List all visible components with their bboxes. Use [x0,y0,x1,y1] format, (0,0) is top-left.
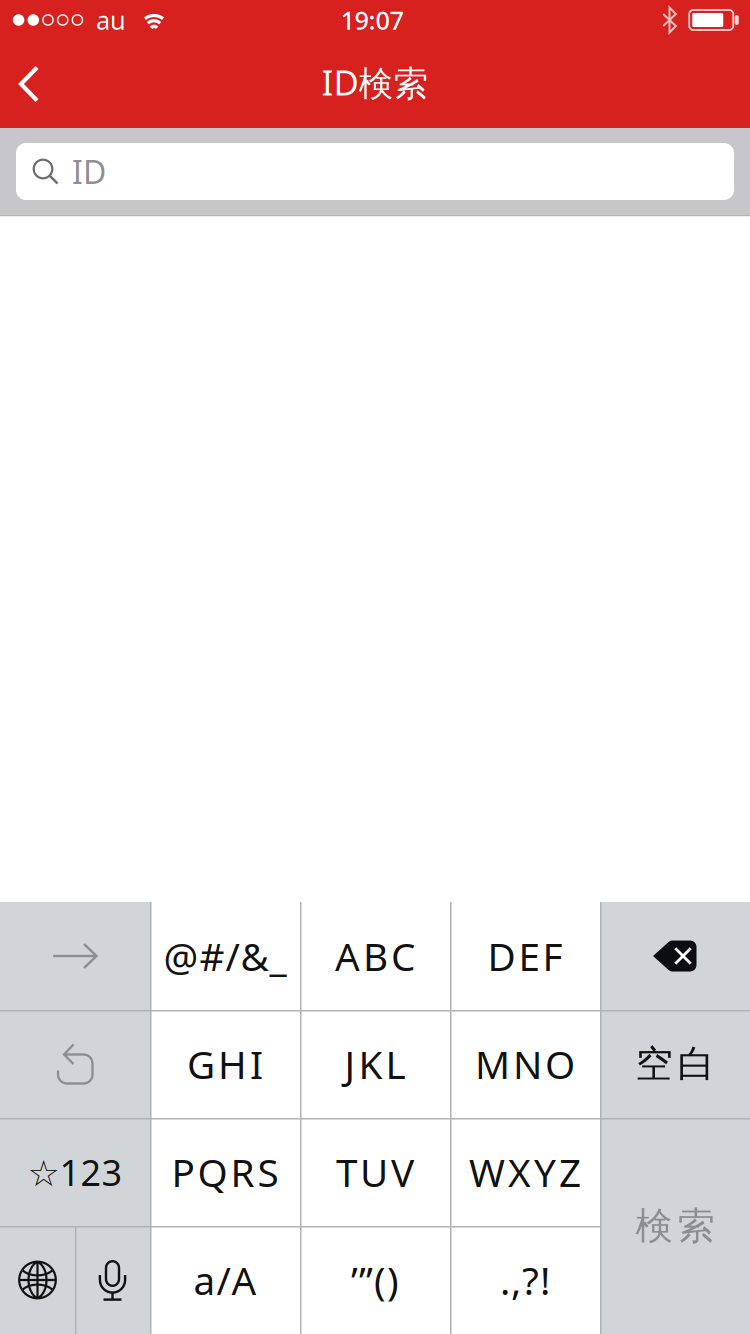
button[interactable]: 空白 [600,1010,750,1118]
button[interactable]: .,?! [450,1226,600,1334]
button[interactable]: TUV [300,1118,450,1226]
staticText: ☆123 [27,1147,122,1196]
staticText: 空白 [635,1040,714,1087]
button[interactable]: PQRS [150,1118,300,1226]
staticText: MNO [475,1038,575,1090]
staticText: JKL [344,1038,405,1090]
staticText: 19:07 [340,3,403,37]
button[interactable]: DEF [450,902,600,1010]
button[interactable]: 検索 [600,1118,750,1334]
button[interactable]: Dictation [75,1226,150,1334]
staticText: GHI [187,1038,263,1090]
staticText: ID [72,150,106,193]
staticText: au [96,3,126,37]
staticText: WXYZ [469,1146,581,1198]
staticText: DEF [487,930,562,982]
staticText: a/A [193,1254,256,1306]
button[interactable]: JKL [300,1010,450,1118]
button[interactable]: ☆123 [0,1118,150,1226]
button[interactable]: Next [0,902,150,1010]
staticText: TUV [336,1146,414,1198]
staticText: ABC [335,930,415,982]
staticText: @#/&_ [163,930,286,982]
button[interactable]: Undo [0,1010,150,1118]
staticText: .,?! [500,1254,550,1306]
button[interactable]: a/A [150,1226,300,1334]
button[interactable]: ABC [300,902,450,1010]
button[interactable]: WXYZ [450,1118,600,1226]
button[interactable]: Back [0,50,64,118]
button[interactable]: ID [16,143,734,200]
staticText: ’”() [351,1254,399,1306]
staticText: ID検索 [321,58,428,106]
button[interactable]: MNO [450,1010,600,1118]
button[interactable]: Delete [600,902,750,1010]
staticText: 検索 [635,1202,714,1249]
button[interactable]: @#/&_ [150,902,300,1010]
staticText: PQRS [171,1146,278,1198]
button[interactable]: ’”() [300,1226,450,1334]
button[interactable]: GHI [150,1010,300,1118]
button[interactable]: Switch keyboard [0,1226,75,1334]
